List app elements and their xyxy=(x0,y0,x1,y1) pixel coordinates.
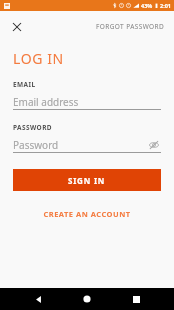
staticText: SIGN IN xyxy=(68,175,106,186)
staticText: EMAIL xyxy=(13,80,36,89)
button[interactable]: Email address xyxy=(13,94,161,109)
button[interactable]: Back xyxy=(27,288,49,310)
button[interactable]: Close xyxy=(9,19,25,35)
staticText: 43% xyxy=(141,2,153,9)
staticText: 2:01 xyxy=(160,2,171,9)
staticText: Password xyxy=(13,138,147,152)
button[interactable]: Show password xyxy=(147,138,161,152)
button[interactable]: Recent apps xyxy=(125,288,147,310)
staticText: FORGOT PASSWORD xyxy=(96,22,165,31)
button[interactable]: SIGN IN xyxy=(13,169,161,191)
button[interactable]: Home xyxy=(76,288,98,310)
staticText: PASSWORD xyxy=(13,123,52,132)
staticText: LOG IN xyxy=(13,49,64,68)
staticText: CREATE AN ACCOUNT xyxy=(43,209,131,219)
button[interactable]: CREATE AN ACCOUNT xyxy=(13,209,161,219)
button[interactable]: FORGOT PASSWORD xyxy=(96,22,165,31)
staticText: Email address xyxy=(13,95,161,109)
button[interactable]: Password xyxy=(13,137,161,152)
